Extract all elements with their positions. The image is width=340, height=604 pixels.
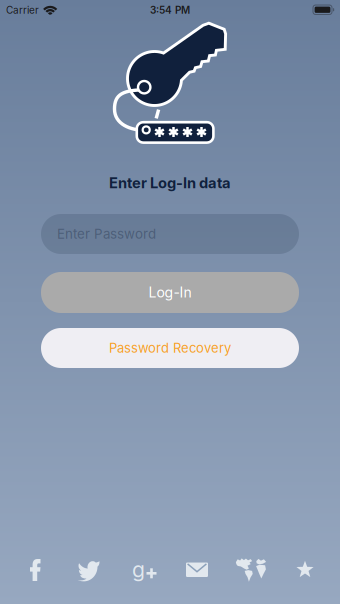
staticText: 3:54 PM [150, 4, 190, 16]
staticText: g [132, 557, 145, 582]
button[interactable]: Email [170, 550, 224, 590]
staticText: Log-In [148, 284, 191, 301]
button[interactable]: Password Recovery [0, 328, 340, 368]
button[interactable]: Favourite [278, 550, 332, 590]
staticText: Enter Password [57, 226, 156, 242]
button[interactable]: Facebook [8, 550, 62, 590]
button[interactable]: Google Plus [116, 550, 170, 590]
staticText: Password Recovery [109, 340, 231, 356]
staticText: Enter Log-In data [109, 174, 231, 192]
staticText: Carrier [6, 4, 39, 16]
button[interactable]: Website [224, 550, 278, 590]
button[interactable]: Log-In [0, 272, 340, 313]
button[interactable]: Twitter [62, 550, 116, 590]
